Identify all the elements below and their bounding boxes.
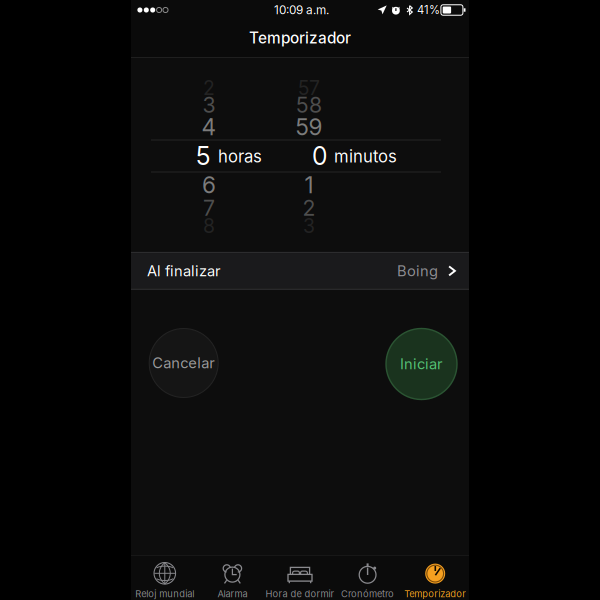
button[interactable]: Alarma bbox=[199, 555, 266, 600]
staticText: Boing bbox=[397, 262, 438, 280]
staticText: 2 bbox=[203, 76, 215, 100]
staticText: Temporizador bbox=[404, 588, 466, 600]
staticText: 57 bbox=[298, 76, 320, 100]
staticText: minutos bbox=[334, 146, 397, 167]
staticText: Cancelar bbox=[152, 354, 215, 372]
staticText: 6 bbox=[202, 171, 216, 199]
staticText: 2 bbox=[302, 195, 315, 221]
staticText: 41% bbox=[417, 3, 440, 17]
button[interactable]: Al finalizar bbox=[131, 252, 469, 290]
staticText: 8 bbox=[203, 214, 215, 238]
staticText: Iniciar bbox=[400, 355, 443, 373]
staticText: 5 bbox=[196, 141, 211, 171]
staticText: 7 bbox=[203, 195, 215, 221]
staticText: 58 bbox=[296, 92, 322, 118]
button[interactable]: Cronómetro bbox=[334, 555, 401, 600]
button[interactable]: Hora de dormir bbox=[266, 555, 334, 600]
staticText: Reloj mundial bbox=[135, 588, 194, 600]
staticText: horas bbox=[218, 146, 262, 167]
staticText: 3 bbox=[202, 92, 215, 118]
staticText: 0 bbox=[312, 141, 327, 171]
button[interactable]: Iniciar bbox=[385, 327, 458, 400]
staticText: Alarma bbox=[217, 588, 247, 600]
staticText: 59 bbox=[295, 113, 322, 141]
staticText: Cronómetro bbox=[341, 588, 394, 600]
staticText: Hora de dormir bbox=[265, 588, 334, 600]
staticText: Temporizador bbox=[249, 29, 351, 47]
button[interactable]: Temporizador bbox=[401, 555, 469, 600]
button[interactable]: Reloj mundial bbox=[131, 555, 199, 600]
staticText: 4 bbox=[201, 113, 216, 141]
staticText: 3 bbox=[303, 214, 315, 238]
staticText: 10:09 a.m. bbox=[274, 3, 329, 17]
button[interactable]: Cancelar bbox=[148, 327, 219, 398]
staticText: Al finalizar bbox=[147, 262, 221, 280]
staticText: 1 bbox=[304, 171, 313, 199]
